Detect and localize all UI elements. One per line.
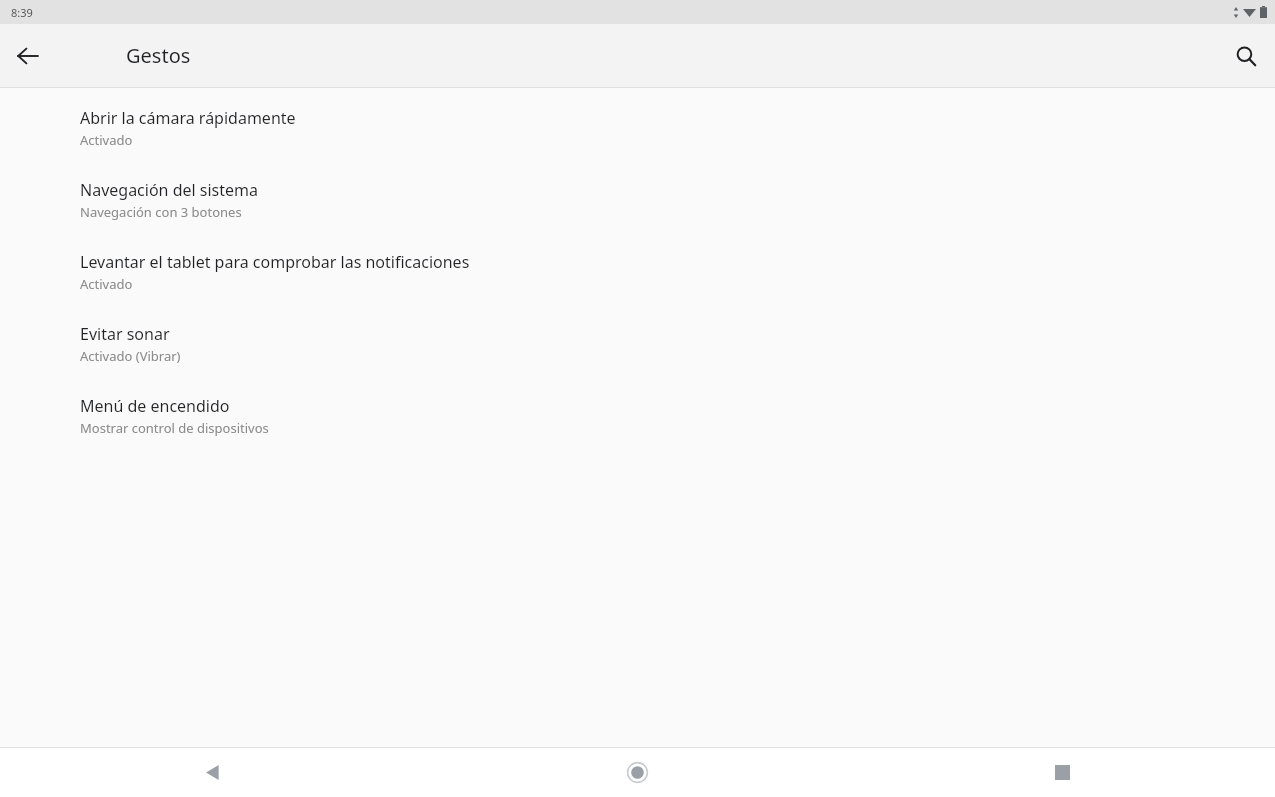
staticText: Levantar el tablet para comprobar las no…	[80, 251, 470, 273]
staticText: Activado	[80, 275, 133, 293]
staticText: Activado	[80, 131, 133, 149]
button[interactable]: Menú de encendido	[0, 395, 1275, 467]
staticText: Activado (Vibrar)	[80, 347, 181, 365]
button[interactable]: Levantar el tablet para comprobar las no…	[0, 251, 1275, 323]
staticText: Abrir la cámara rápidamente	[80, 107, 296, 129]
staticText: Menú de encendido	[80, 395, 230, 417]
button[interactable]: Atrás	[6, 34, 50, 78]
button[interactable]: Evitar sonar	[0, 323, 1275, 395]
button[interactable]: Atrás	[0, 748, 425, 797]
staticText: 8:39	[11, 5, 33, 20]
button[interactable]: Buscar	[1224, 34, 1268, 78]
button[interactable]: Inicio	[425, 748, 850, 797]
staticText: Navegación del sistema	[80, 179, 258, 201]
button[interactable]: Navegación del sistema	[0, 179, 1275, 251]
staticText: Gestos	[126, 42, 191, 69]
button[interactable]: Abrir la cámara rápidamente	[0, 107, 1275, 179]
staticText: Navegación con 3 botones	[80, 203, 242, 221]
staticText: Mostrar control de dispositivos	[80, 419, 269, 437]
staticText: Evitar sonar	[80, 323, 170, 345]
button[interactable]: Aplicaciones recientes	[850, 748, 1275, 797]
